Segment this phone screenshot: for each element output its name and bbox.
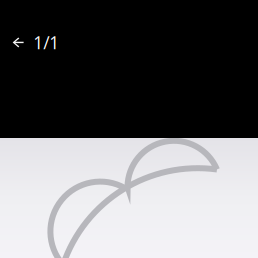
- staticText: 1/1: [33, 31, 59, 54]
- button[interactable]: Back, photo 1 of 1: [0, 20, 71, 65]
